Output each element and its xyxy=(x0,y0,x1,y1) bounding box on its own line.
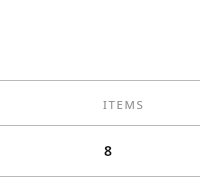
button[interactable]: ITEMS xyxy=(0,81,200,125)
button[interactable]: 8 xyxy=(0,126,200,176)
staticText: ITEMS xyxy=(103,97,145,113)
staticText: 8 xyxy=(104,141,113,160)
